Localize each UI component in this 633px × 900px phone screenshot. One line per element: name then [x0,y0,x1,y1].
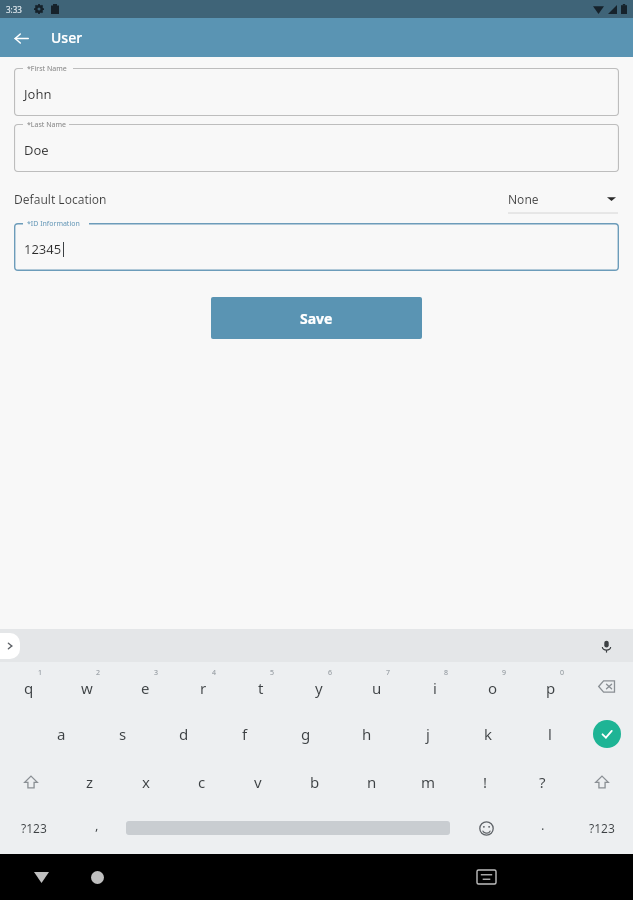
button[interactable]: Shift [571,758,633,806]
button[interactable]: h [336,710,397,758]
button[interactable]: Backspace [580,662,633,710]
button[interactable]: s [92,710,153,758]
button[interactable]: t [232,662,290,710]
button[interactable]: *Last Name [14,124,619,172]
staticText: ?123 [21,820,47,836]
button[interactable]: o [464,662,522,710]
staticText: l [548,724,552,744]
button[interactable]: f [214,710,275,758]
button[interactable]: Space [126,806,450,850]
staticText: q [24,678,34,698]
staticText: v [254,772,262,792]
staticText: w [81,678,93,698]
staticText: h [362,724,372,744]
staticText: f [242,724,248,744]
staticText: p [546,678,556,698]
staticText: d [179,724,189,744]
button[interactable]: Default Location [0,184,633,214]
button[interactable]: v [230,758,286,806]
button[interactable]: p [522,662,580,710]
staticText: n [367,772,377,792]
button[interactable]: k [458,710,519,758]
staticText: , [95,816,99,834]
staticText: Doe [24,141,49,159]
button[interactable]: e [116,662,174,710]
button[interactable]: Keyboard [470,861,502,893]
staticText: None [508,191,539,207]
button[interactable]: m [400,758,457,806]
button[interactable]: ! [457,758,514,806]
button[interactable]: Save [211,297,422,339]
button[interactable]: i [406,662,464,710]
staticText: 7 [386,668,391,678]
staticText: John [24,85,52,103]
button[interactable]: n [343,758,400,806]
staticText: 2 [96,668,101,678]
button[interactable]: Emoji [458,806,515,850]
button[interactable]: Voice input [595,635,617,657]
button[interactable]: Shift [0,758,62,806]
staticText: . [541,816,545,834]
button[interactable]: w [58,662,116,710]
staticText: r [200,678,207,698]
button[interactable]: a [30,710,92,758]
staticText: 8 [444,668,449,678]
button[interactable]: g [275,710,336,758]
staticText: b [310,772,320,792]
staticText: 5 [270,668,275,678]
button[interactable]: Expand suggestions [0,633,20,659]
button[interactable]: *ID Information [14,223,619,271]
staticText: s [119,724,127,744]
button[interactable]: ?123 [571,806,633,850]
button[interactable]: Back [8,25,34,51]
staticText: User [51,28,83,47]
staticText: ? [539,772,546,792]
button[interactable]: . [515,806,571,850]
staticText: a [57,724,66,744]
staticText: *ID Information [27,219,80,229]
staticText: 4 [212,668,217,678]
button[interactable]: j [397,710,458,758]
staticText: 0 [560,668,565,678]
button[interactable]: l [519,710,580,758]
staticText: 3 [154,668,159,678]
staticText: Default Location [14,191,107,207]
staticText: 12345 [24,240,62,258]
button[interactable]: r [174,662,232,710]
button[interactable]: u [348,662,406,710]
staticText: m [421,772,436,792]
staticText: ! [483,772,488,792]
staticText: i [433,678,437,698]
button[interactable]: x [118,758,174,806]
staticText: 3:33 [6,4,22,15]
staticText: e [141,678,150,698]
button[interactable]: d [153,710,214,758]
staticText: c [198,772,206,792]
staticText: y [315,678,323,698]
button[interactable]: b [286,758,343,806]
button[interactable]: q [0,662,58,710]
staticText: 6 [328,668,333,678]
button[interactable]: y [290,662,348,710]
button[interactable]: Enter [580,710,633,758]
staticText: o [488,678,498,698]
staticText: ?123 [589,820,615,836]
staticText: *Last Name [27,120,66,130]
button[interactable]: c [174,758,230,806]
staticText: *First Name [27,64,67,74]
button[interactable]: ?123 [0,806,68,850]
staticText: g [301,724,311,744]
staticText: j [426,724,430,744]
button[interactable]: *First Name [14,68,619,116]
staticText: 1 [38,668,43,678]
staticText: z [86,772,94,792]
button[interactable]: ? [514,758,571,806]
staticText: u [372,678,382,698]
staticText: x [142,772,150,792]
staticText: Save [300,309,333,328]
button[interactable]: Back [26,862,56,892]
staticText: 9 [502,668,507,678]
button[interactable]: , [68,806,126,850]
button[interactable]: z [62,758,118,806]
button[interactable]: Home [82,862,112,892]
